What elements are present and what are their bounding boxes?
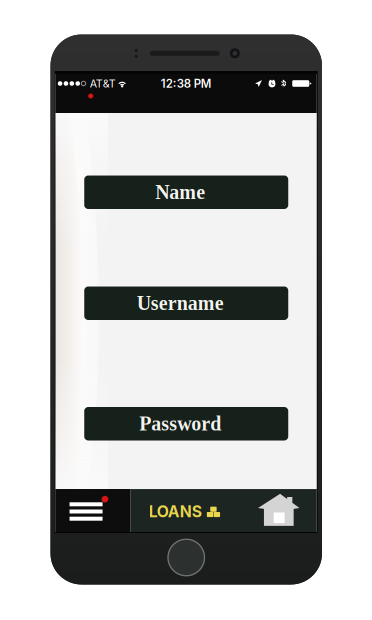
button[interactable]: Username	[84, 286, 288, 320]
button[interactable]: Menu	[56, 489, 131, 532]
button[interactable]: Password	[84, 407, 288, 440]
staticText: Password	[139, 413, 221, 435]
staticText: 12:38 PM	[161, 77, 212, 90]
staticText: Name	[155, 181, 205, 203]
staticText: Username	[137, 292, 224, 314]
staticText: LOANS	[149, 502, 202, 521]
button[interactable]: LOANS	[131, 489, 242, 532]
staticText: AT&T	[90, 77, 116, 90]
button[interactable]: Name	[84, 175, 288, 209]
button[interactable]: Home	[242, 489, 317, 532]
